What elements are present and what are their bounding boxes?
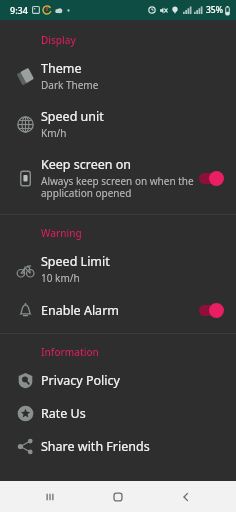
button[interactable]: Home (100, 481, 136, 512)
staticText: Information (41, 345, 99, 359)
button[interactable]: Rate Us (0, 397, 236, 430)
button[interactable]: Back (168, 481, 204, 512)
staticText: Speed Limit (41, 253, 110, 270)
staticText: Theme (41, 60, 82, 77)
staticText: Warning (41, 226, 82, 240)
staticText: Km/h (41, 126, 67, 140)
staticText: Enable Alarm (41, 302, 119, 319)
staticText: Share with Friends (41, 438, 150, 455)
button[interactable]: Privacy Policy (0, 364, 236, 397)
button[interactable]: Toggle (198, 169, 232, 187)
button[interactable]: Share with Friends (0, 430, 236, 463)
staticText: Always keep screen on when the applicati… (41, 174, 194, 200)
staticText: Keep screen on (41, 156, 132, 173)
staticText: Privacy Policy (41, 372, 120, 389)
button[interactable]: Enable Alarm (0, 293, 236, 327)
button[interactable]: Recent apps (32, 481, 68, 512)
button[interactable]: Keep screen on (0, 148, 236, 208)
button[interactable]: Speed Limit (0, 245, 236, 293)
button[interactable]: Toggle (198, 301, 232, 319)
staticText: Rate Us (41, 405, 86, 422)
staticText: Dark Theme (41, 78, 99, 92)
button[interactable]: Theme (0, 52, 236, 100)
staticText: 9:34 (10, 4, 28, 16)
staticText: 35% (206, 4, 223, 16)
button[interactable]: Speed unit (0, 100, 236, 148)
staticText: Speed unit (41, 108, 104, 125)
staticText: 10 km/h (41, 271, 80, 285)
staticText: Display (41, 33, 76, 47)
